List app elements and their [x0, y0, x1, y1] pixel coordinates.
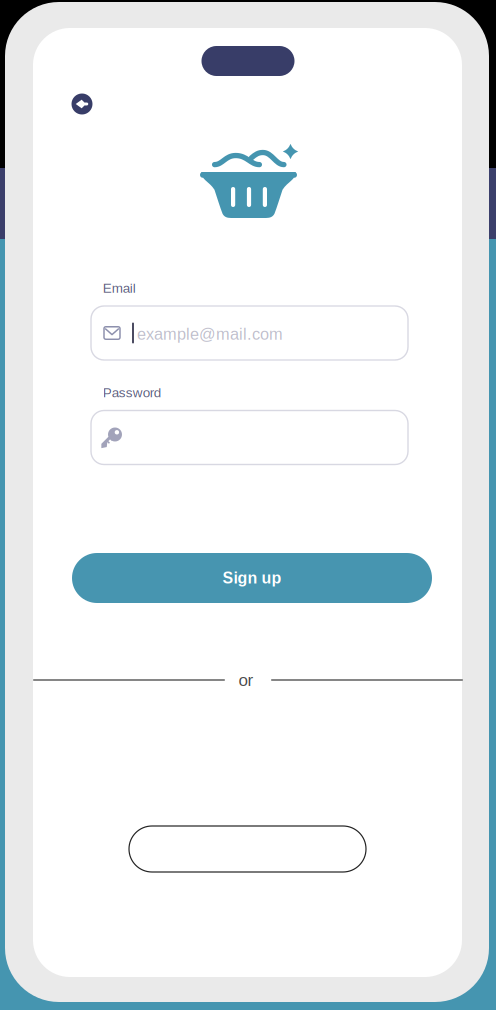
button[interactable]: Sign up [72, 553, 432, 603]
button[interactable]: Back [71, 93, 92, 114]
staticText: example@mail.com [137, 325, 283, 343]
staticText: or [238, 670, 253, 690]
staticText: Sign up [222, 569, 281, 587]
staticText: Password [103, 385, 161, 400]
staticText: Email [103, 280, 136, 295]
button[interactable]: Continue with provider [129, 826, 366, 872]
